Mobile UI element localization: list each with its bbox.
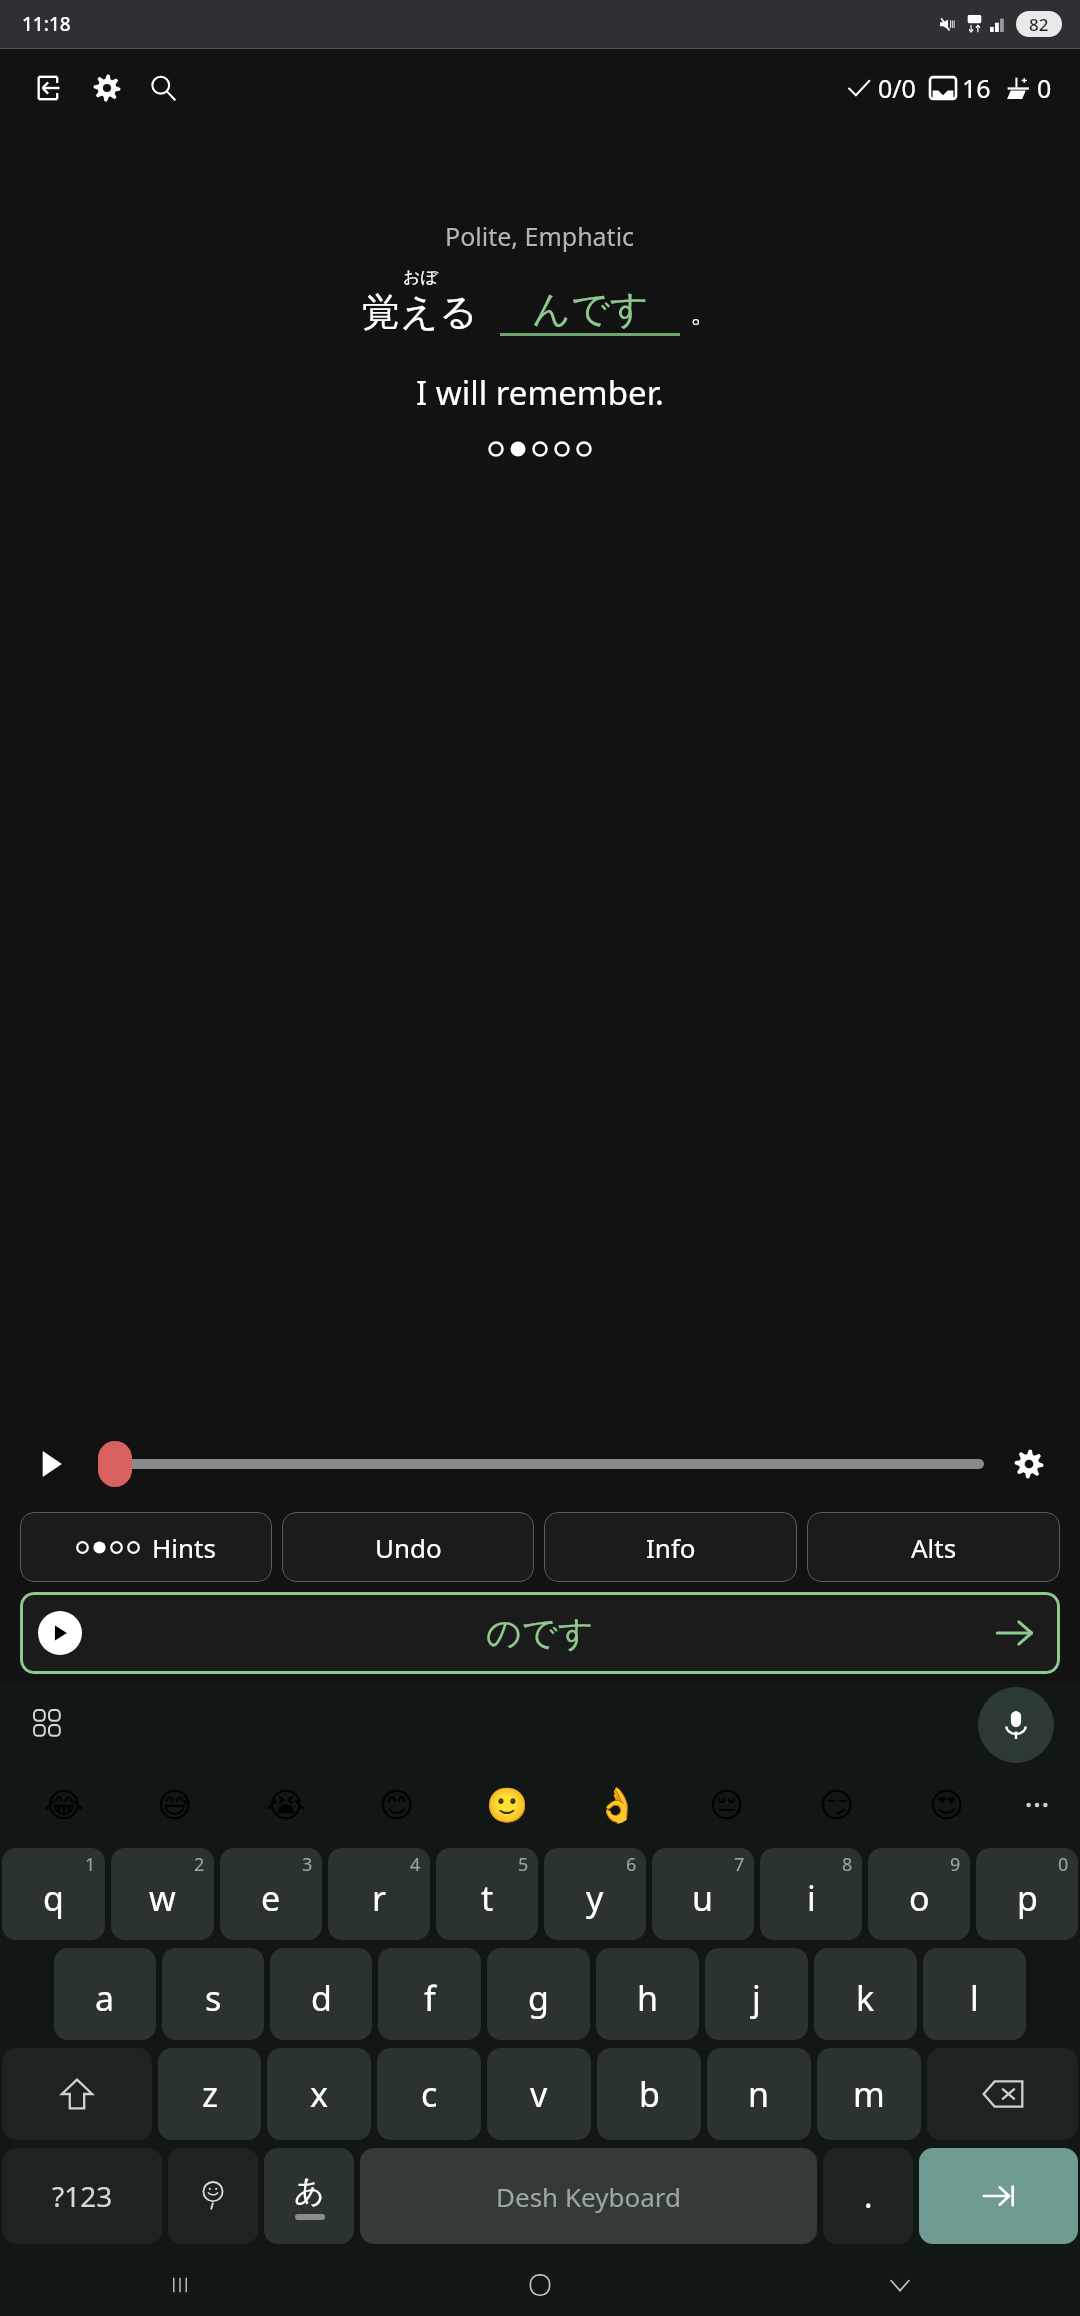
button[interactable]: l [923, 1948, 1026, 2040]
button[interactable]: Search [140, 65, 186, 111]
button[interactable]: x [267, 2048, 371, 2140]
button[interactable]: a [54, 1948, 156, 2040]
button[interactable]: 👌 [562, 1766, 672, 1844]
button[interactable]: Info [544, 1512, 797, 1582]
staticText: j [752, 1975, 761, 2021]
staticText: 0 [1058, 1852, 1069, 1877]
staticText: Undo [375, 1530, 442, 1565]
staticText: 0/0 [878, 71, 916, 105]
staticText: 6 [626, 1852, 637, 1877]
staticText: 7 [734, 1852, 745, 1877]
staticText: e [261, 1875, 281, 1921]
button[interactable]: 😂 [8, 1766, 119, 1844]
button[interactable]: . [823, 2148, 913, 2244]
button[interactable]: 4 [328, 1848, 430, 1940]
button[interactable]: h [596, 1948, 699, 2040]
button[interactable]: Emoji [168, 2148, 258, 2244]
button[interactable]: 2 [111, 1848, 214, 1940]
button[interactable]: 9 [868, 1848, 970, 1940]
button[interactable]: Settings [84, 65, 130, 111]
button[interactable]: m [817, 2048, 921, 2140]
button[interactable]: Home [360, 2254, 720, 2316]
staticText: w [149, 1875, 176, 1921]
button[interactable]: Recents [0, 2254, 360, 2316]
button[interactable]: 😅 [119, 1766, 230, 1844]
staticText: 🙂 [486, 1785, 529, 1825]
staticText: おぼ [403, 267, 438, 288]
button[interactable]: n [707, 2048, 811, 2140]
staticText: 😏 [819, 1785, 855, 1825]
button[interactable]: 7 [652, 1848, 754, 1940]
button[interactable]: b [597, 2048, 701, 2140]
staticText: i [807, 1875, 816, 1921]
button[interactable]: d [270, 1948, 372, 2040]
button[interactable]: のです [20, 1592, 1060, 1674]
button[interactable]: Shift [2, 2048, 152, 2140]
staticText: n [748, 2071, 770, 2117]
staticText: z [202, 2071, 218, 2117]
button[interactable]: 5 [436, 1848, 538, 1940]
button[interactable]: 8 [760, 1848, 862, 1940]
staticText: f [424, 1975, 436, 2021]
button[interactable]: Undo [282, 1512, 534, 1582]
button[interactable]: 😭 [230, 1766, 341, 1844]
staticText: m [853, 2071, 885, 2117]
button[interactable]: v [487, 2048, 591, 2140]
staticText: んです [532, 285, 649, 333]
button[interactable]: s [162, 1948, 264, 2040]
staticText: 0 [1037, 71, 1052, 105]
staticText: x [310, 2071, 328, 2117]
staticText: s [205, 1975, 222, 2021]
staticText: r [372, 1875, 387, 1921]
button[interactable]: 6 [544, 1848, 646, 1940]
button[interactable]: z [158, 2048, 261, 2140]
staticText: あ [294, 2172, 325, 2210]
button[interactable]: f [378, 1948, 481, 2040]
button[interactable]: Backspace [927, 2048, 1078, 2140]
button[interactable]: Keyboard modes [24, 1700, 74, 1750]
staticText: c [421, 2071, 438, 2117]
button[interactable]: Enter [919, 2148, 1078, 2244]
staticText: 82 [1029, 13, 1049, 36]
button[interactable]: 🙂 [452, 1766, 562, 1844]
staticText: l [970, 1975, 979, 2021]
staticText: 。 [690, 295, 718, 330]
staticText: h [637, 1975, 659, 2021]
staticText: y [586, 1875, 604, 1921]
button[interactable]: More emoji [1002, 1766, 1072, 1844]
staticText: 😍 [929, 1785, 965, 1825]
button[interactable]: j [705, 1948, 808, 2040]
staticText: g [528, 1975, 549, 2021]
button[interactable]: g [487, 1948, 590, 2040]
button[interactable]: Voice input [978, 1687, 1054, 1763]
button[interactable]: Hints [20, 1512, 272, 1582]
staticText: 9 [950, 1852, 961, 1877]
button[interactable]: あ [264, 2148, 354, 2244]
button[interactable]: Desh Keyboard [360, 2148, 817, 2244]
staticText: 😂 [44, 1785, 84, 1825]
button[interactable]: 😔 [672, 1766, 782, 1844]
staticText: 😔 [709, 1785, 745, 1825]
button[interactable]: 😏 [782, 1766, 892, 1844]
button[interactable]: Exit [28, 65, 74, 111]
button[interactable]: ?123 [2, 2148, 162, 2244]
button[interactable]: 1 [2, 1848, 105, 1940]
button[interactable]: c [377, 2048, 481, 2140]
staticText: 5 [518, 1852, 529, 1877]
button[interactable]: Play [24, 1437, 78, 1491]
staticText: 😊 [379, 1785, 415, 1825]
button[interactable]: 😍 [892, 1766, 1002, 1844]
button[interactable]: 0 [976, 1848, 1078, 1940]
staticText: 1 [85, 1852, 96, 1877]
staticText: v [530, 2071, 548, 2117]
button[interactable]: Hide keyboard [720, 2254, 1080, 2316]
staticText: b [639, 2071, 660, 2117]
button[interactable]: Audio settings [1002, 1437, 1056, 1491]
button[interactable]: k [814, 1948, 917, 2040]
staticText: 覚える [362, 288, 478, 336]
button[interactable]: Alts [807, 1512, 1060, 1582]
button[interactable]: 3 [220, 1848, 322, 1940]
staticText: Desh Keyboard [496, 2179, 681, 2214]
button[interactable]: 😊 [341, 1766, 452, 1844]
staticText: k [856, 1975, 875, 2021]
